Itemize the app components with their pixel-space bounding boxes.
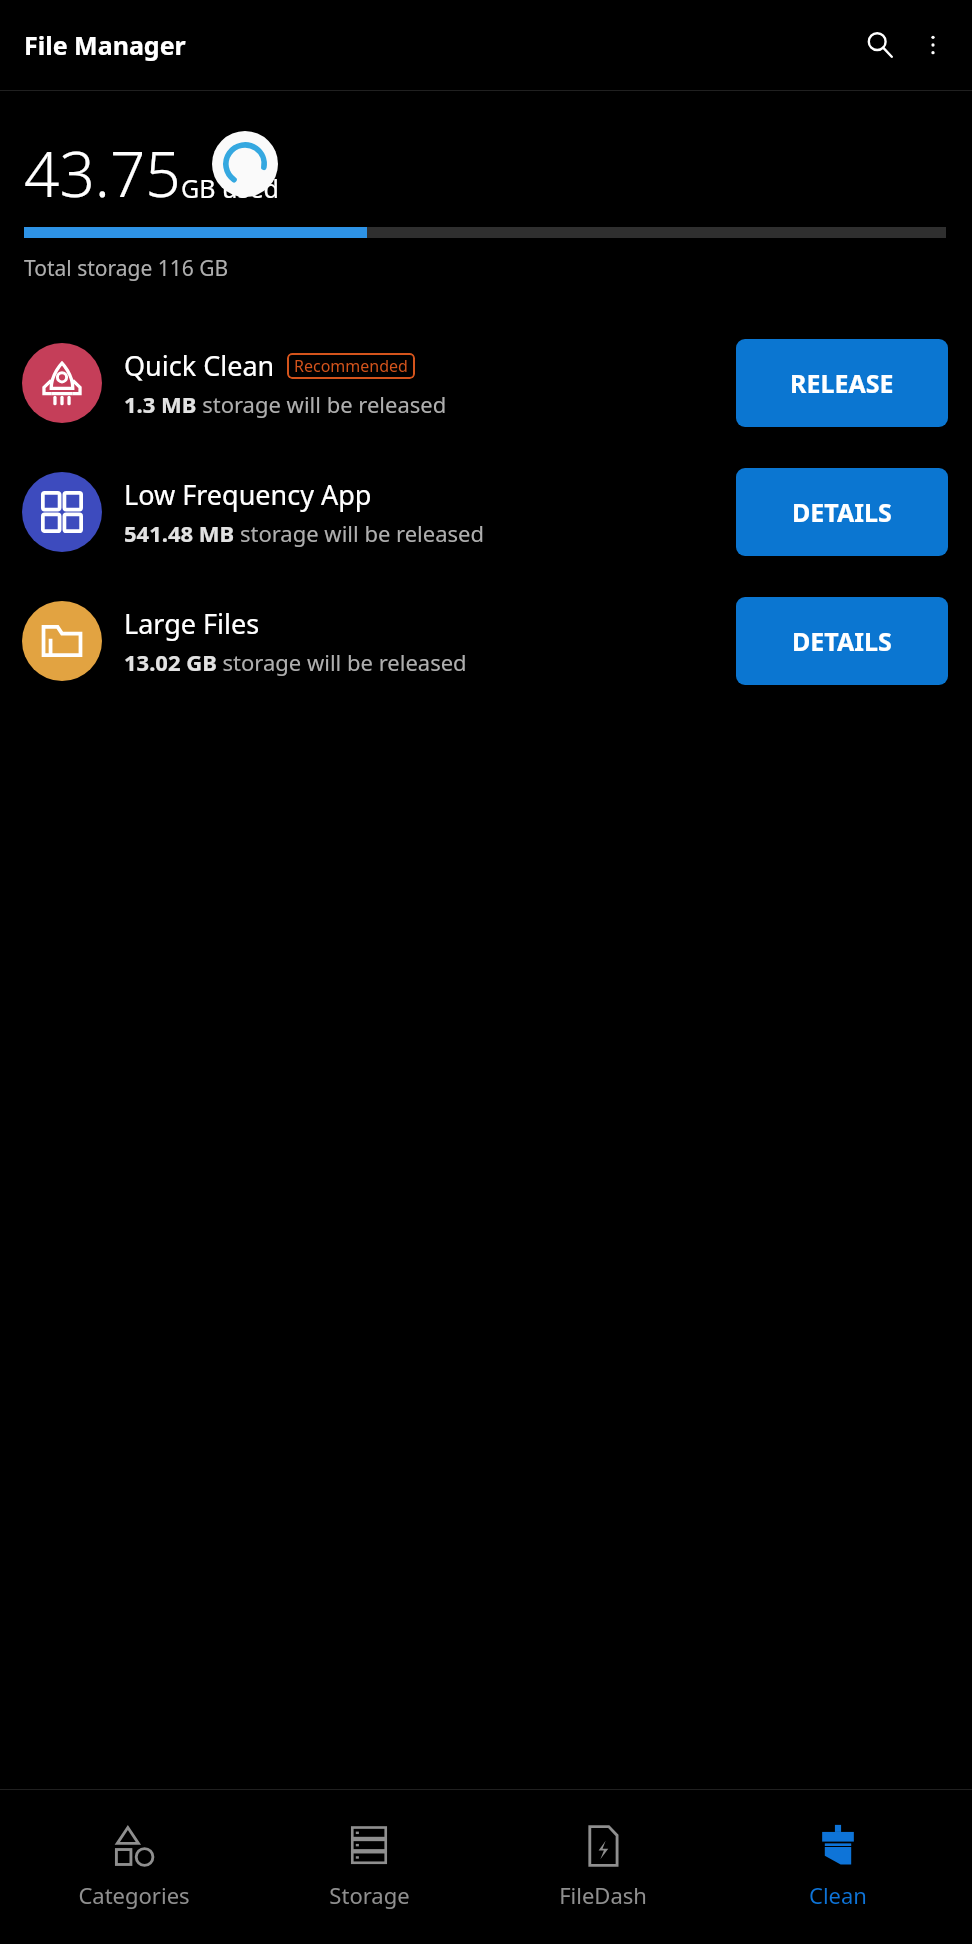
staticText: 13.02 GB storage will be released: [124, 647, 467, 677]
button[interactable]: Low Frequency App: [0, 468, 972, 556]
staticText: Quick Clean: [124, 347, 275, 384]
staticText: Storage: [329, 1880, 410, 1910]
button[interactable]: Search: [852, 17, 908, 73]
button[interactable]: DETAILS: [736, 597, 948, 685]
staticText: RELEASE: [790, 366, 894, 400]
staticText: Clean: [809, 1880, 867, 1910]
staticText: Categories: [78, 1880, 190, 1910]
staticText: Total storage 116 GB: [24, 254, 229, 283]
button[interactable]: More options: [908, 20, 958, 70]
staticText: Recommended: [294, 355, 408, 377]
button[interactable]: Large Files: [0, 597, 972, 685]
button[interactable]: Clean: [738, 1790, 938, 1944]
button[interactable]: Categories: [34, 1790, 234, 1944]
staticText: File Manager: [24, 28, 186, 62]
staticText: DETAILS: [792, 624, 892, 658]
button[interactable]: Quick Clean: [0, 339, 972, 427]
staticText: GB used: [181, 171, 279, 205]
staticText: FileDash: [559, 1880, 647, 1910]
button[interactable]: FileDash: [503, 1790, 703, 1944]
staticText: 1.3 MB storage will be released: [124, 389, 447, 419]
staticText: Large Files: [124, 605, 260, 642]
staticText: 43.75: [24, 131, 181, 209]
staticText: 541.48 MB storage will be released: [124, 518, 485, 548]
staticText: Low Frequency App: [124, 476, 372, 513]
button[interactable]: Storage: [269, 1790, 469, 1944]
button[interactable]: DETAILS: [736, 468, 948, 556]
staticText: DETAILS: [792, 495, 892, 529]
button[interactable]: RELEASE: [736, 339, 948, 427]
